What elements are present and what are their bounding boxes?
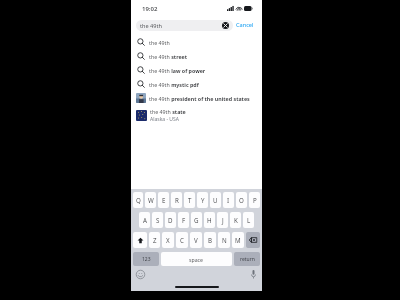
button[interactable]: E — [158, 192, 169, 208]
staticText: A — [143, 216, 147, 224]
button[interactable]: the 49th mystic pdf — [131, 77, 262, 91]
button[interactable]: Y — [197, 192, 208, 208]
button[interactable]: J — [217, 212, 228, 228]
button[interactable]: X — [162, 232, 174, 248]
button[interactable]: the 49th — [136, 20, 233, 31]
button[interactable]: M — [232, 232, 244, 248]
staticText: O — [239, 196, 244, 204]
staticText: T — [188, 196, 192, 204]
button[interactable]: F — [178, 212, 189, 228]
staticText: E — [162, 196, 166, 204]
staticText: the 49th law of power — [149, 67, 206, 74]
staticText: 19:02 — [142, 5, 158, 13]
button[interactable]: K — [230, 212, 241, 228]
staticText: P — [253, 196, 257, 204]
button[interactable]: Shift — [133, 232, 147, 248]
button[interactable]: O — [236, 192, 247, 208]
staticText: U — [213, 196, 218, 204]
button[interactable]: C — [176, 232, 188, 248]
staticText: Q — [136, 196, 141, 204]
button[interactable]: the 49th state — [131, 105, 262, 125]
staticText: F — [182, 216, 186, 224]
button[interactable]: return — [234, 252, 260, 266]
staticText: I — [227, 196, 230, 204]
button[interactable]: the 49th street — [131, 49, 262, 63]
staticText: the 49th president of the united states — [149, 95, 250, 102]
staticText: W — [148, 196, 154, 204]
staticText: M — [235, 236, 241, 244]
button[interactable]: 123 — [133, 252, 159, 266]
button[interactable]: Dictation — [251, 270, 256, 279]
button[interactable]: the 49th president of the united states — [131, 91, 262, 105]
staticText: V — [194, 236, 198, 244]
button[interactable]: H — [204, 212, 215, 228]
staticText: D — [168, 216, 173, 224]
button[interactable]: L — [243, 212, 254, 228]
button[interactable]: S — [152, 212, 163, 228]
button[interactable]: space — [161, 252, 232, 266]
staticText: K — [234, 216, 238, 224]
staticText: the 49th street — [149, 53, 188, 60]
button[interactable]: Emoji keyboard — [136, 270, 145, 279]
staticText: H — [207, 216, 212, 224]
button[interactable]: P — [249, 192, 260, 208]
button[interactable]: G — [191, 212, 202, 228]
staticText: G — [194, 216, 199, 224]
staticText: the 49th — [149, 39, 170, 46]
button[interactable]: the 49th — [131, 35, 262, 49]
staticText: 123 — [142, 256, 151, 263]
staticText: C — [180, 236, 184, 244]
staticText: space — [189, 256, 204, 263]
staticText: X — [166, 236, 170, 244]
staticText: the 49th — [140, 22, 222, 30]
button[interactable]: Q — [133, 192, 143, 208]
button[interactable]: D — [165, 212, 176, 228]
staticText: J — [222, 216, 224, 224]
button[interactable]: B — [204, 232, 216, 248]
staticText: B — [208, 236, 213, 244]
staticText: the 49th state — [150, 108, 186, 115]
button[interactable]: Backspace — [246, 232, 260, 248]
button[interactable]: W — [145, 192, 156, 208]
button[interactable]: V — [190, 232, 202, 248]
staticText: the 49th mystic pdf — [149, 81, 199, 88]
button[interactable]: the 49th law of power — [131, 63, 262, 77]
staticText: S — [156, 216, 160, 224]
staticText: N — [222, 236, 227, 244]
staticText: Z — [153, 236, 157, 244]
button[interactable]: Z — [149, 232, 160, 248]
staticText: R — [175, 196, 179, 204]
button[interactable]: Cancel — [233, 19, 257, 31]
button[interactable]: Clear search — [222, 22, 229, 29]
staticText: L — [247, 216, 251, 224]
button[interactable]: I — [223, 192, 234, 208]
button[interactable]: N — [218, 232, 230, 248]
staticText: Y — [201, 196, 205, 204]
staticText: Alaska - USA — [150, 116, 179, 123]
staticText: return — [240, 256, 255, 263]
button[interactable]: A — [139, 212, 150, 228]
button[interactable]: R — [171, 192, 182, 208]
button[interactable]: U — [210, 192, 221, 208]
button[interactable]: T — [184, 192, 195, 208]
staticText: Cancel — [236, 21, 254, 29]
